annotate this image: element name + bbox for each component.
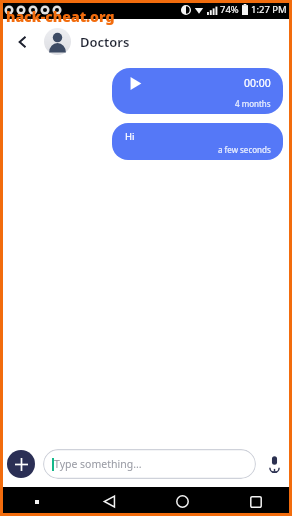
button[interactable]: Play voice message (126, 74, 144, 92)
button[interactable]: Add attachment (7, 450, 35, 478)
button[interactable]: Back (73, 487, 146, 516)
staticText: hack-cheat.org (6, 7, 115, 26)
staticText: 4 months (235, 98, 271, 109)
staticText: a few seconds (218, 144, 271, 155)
button[interactable]: Type something... (43, 449, 256, 479)
staticText: Doctors (80, 33, 130, 51)
button[interactable]: Recent apps (219, 487, 292, 516)
staticText: 74% (220, 3, 239, 16)
button[interactable]: Back (10, 29, 36, 55)
staticText: Type something... (54, 457, 142, 471)
staticText: Hi (125, 130, 135, 143)
staticText: 1:27 PM (251, 3, 287, 16)
button[interactable]: Record voice message (263, 453, 285, 475)
button[interactable]: Hi (112, 123, 283, 160)
button[interactable]: Play voice message (112, 68, 283, 114)
button[interactable]: Doctors (44, 28, 130, 55)
button[interactable]: Home (146, 487, 219, 516)
button[interactable]: Menu (0, 487, 73, 516)
staticText: 00:00 (244, 76, 271, 90)
